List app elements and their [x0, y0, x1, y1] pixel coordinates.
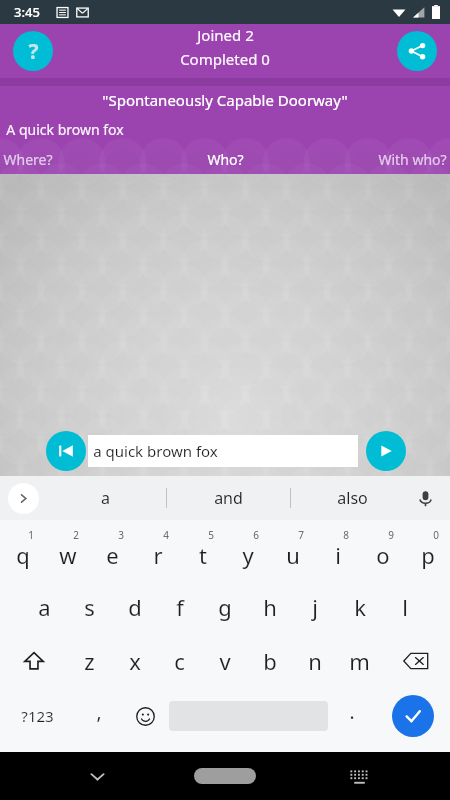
staticText: 4 [163, 528, 169, 542]
button[interactable]: Emoji [122, 688, 169, 744]
staticText: 2 [73, 528, 79, 542]
button[interactable]: s [67, 580, 112, 634]
button[interactable]: g [202, 580, 247, 634]
button[interactable]: A quick brown fox [0, 114, 450, 144]
staticText: a quick brown fox [93, 441, 218, 461]
button[interactable]: b [247, 634, 292, 688]
button[interactable]: , [75, 688, 122, 744]
staticText: f [176, 592, 184, 622]
staticText: a [38, 592, 51, 622]
button[interactable]: n [292, 634, 337, 688]
staticText: ? [28, 37, 39, 66]
staticText: y [242, 540, 254, 570]
staticText: and [214, 487, 243, 509]
staticText: . [349, 699, 355, 725]
button[interactable]: 7 [270, 524, 315, 580]
button[interactable]: a [22, 580, 67, 634]
staticText: c [174, 646, 185, 676]
staticText: also [337, 487, 368, 509]
staticText: , [96, 699, 102, 725]
staticText: 5 [208, 528, 214, 542]
button[interactable]: z [67, 634, 112, 688]
button[interactable]: v [202, 634, 247, 688]
staticText: A quick brown fox [6, 120, 124, 139]
button[interactable]: Switch keyboard [342, 759, 376, 793]
staticText: b [263, 646, 277, 676]
staticText: n [308, 646, 322, 676]
staticText: ?123 [21, 706, 54, 726]
button[interactable]: 2 [45, 524, 90, 580]
button[interactable]: a quick brown fox [88, 435, 358, 467]
button[interactable]: and [167, 476, 290, 520]
staticText: 9 [388, 528, 394, 542]
staticText: Completed 0 [180, 49, 270, 69]
staticText: p [421, 540, 435, 570]
staticText: w [59, 540, 77, 570]
button[interactable]: Backspace [382, 634, 450, 688]
staticText: Who? [207, 150, 244, 169]
button[interactable]: 8 [315, 524, 360, 580]
button[interactable]: More suggestions [8, 483, 39, 514]
staticText: g [218, 592, 232, 622]
button[interactable]: Who? [151, 144, 299, 174]
staticText: 3:45 [14, 3, 40, 21]
staticText: q [16, 540, 30, 570]
staticText: h [263, 592, 277, 622]
button[interactable]: x [112, 634, 157, 688]
staticText: l [402, 592, 408, 622]
button[interactable]: 6 [225, 524, 270, 580]
staticText: 1 [28, 528, 34, 542]
button[interactable]: ?123 [0, 688, 75, 744]
button[interactable]: Previous [46, 431, 86, 471]
staticText: i [335, 540, 341, 570]
button[interactable]: 9 [360, 524, 405, 580]
button[interactable]: 4 [135, 524, 180, 580]
staticText: m [349, 646, 370, 676]
button[interactable]: Share [397, 31, 437, 71]
staticText: Where? [3, 150, 53, 169]
button[interactable]: k [337, 580, 382, 634]
button[interactable]: a [44, 476, 166, 520]
button[interactable]: 0 [405, 524, 450, 580]
staticText: With who? [378, 150, 447, 169]
button[interactable]: c [157, 634, 202, 688]
staticText: 8 [343, 528, 349, 542]
button[interactable]: f [157, 580, 202, 634]
button[interactable]: 5 [180, 524, 225, 580]
button[interactable]: h [247, 580, 292, 634]
button[interactable]: m [337, 634, 382, 688]
button[interactable]: j [292, 580, 337, 634]
button[interactable]: Enter [392, 695, 434, 737]
button[interactable]: . [328, 688, 375, 744]
button[interactable]: Play [366, 431, 406, 471]
button[interactable]: 3 [90, 524, 135, 580]
staticText: 0 [433, 528, 439, 542]
staticText: a [101, 487, 110, 509]
staticText: k [354, 592, 366, 622]
button[interactable]: Help [13, 31, 53, 71]
button[interactable]: d [112, 580, 157, 634]
staticText: z [84, 646, 95, 676]
button[interactable]: With who? [299, 144, 447, 174]
staticText: o [376, 540, 390, 570]
button[interactable]: also [291, 476, 414, 520]
staticText: 7 [298, 528, 304, 542]
staticText: v [219, 646, 231, 676]
button[interactable]: Shift [0, 634, 67, 688]
staticText: r [153, 540, 163, 570]
button[interactable]: Hide keyboard [80, 759, 114, 793]
button[interactable]: Voice input [410, 483, 440, 513]
staticText: e [106, 540, 119, 570]
staticText: 6 [253, 528, 259, 542]
button[interactable]: l [382, 580, 427, 634]
staticText: u [286, 540, 300, 570]
staticText: x [129, 646, 141, 676]
staticText: s [84, 592, 95, 622]
button[interactable]: 1 [0, 524, 45, 580]
staticText: "Spontaneously Capable Doorway" [102, 90, 348, 110]
staticText: d [128, 592, 142, 622]
staticText: j [312, 592, 318, 622]
button[interactable]: Home [194, 768, 256, 784]
button[interactable]: Where? [3, 144, 151, 174]
